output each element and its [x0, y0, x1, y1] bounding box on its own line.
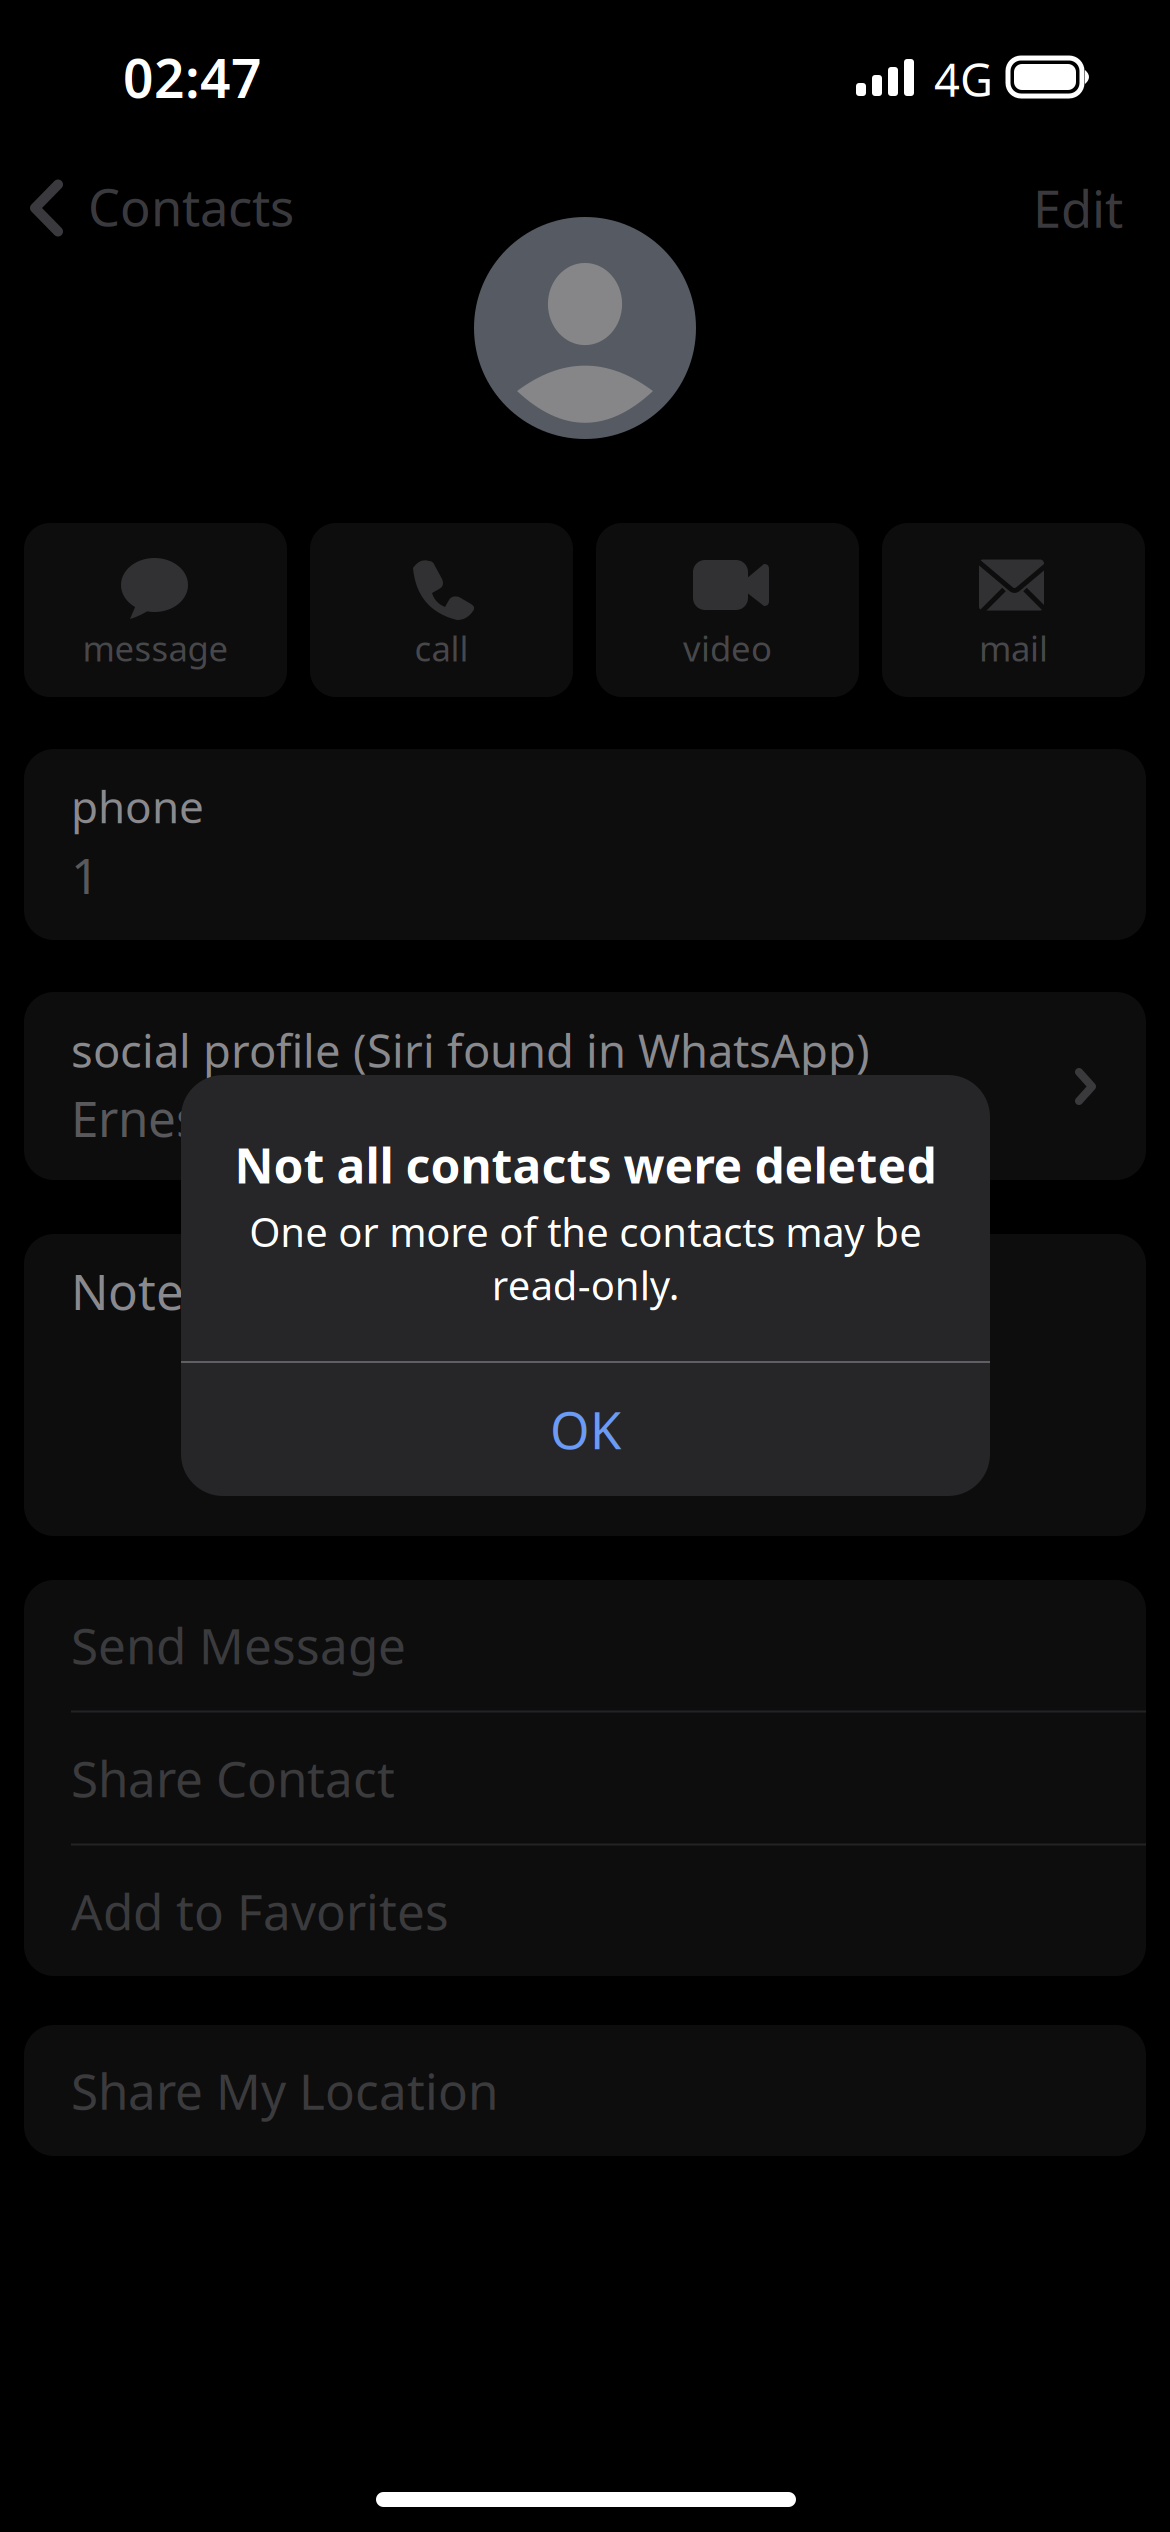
button[interactable]: message	[24, 523, 287, 697]
staticText: call	[414, 625, 468, 671]
button[interactable]: video	[596, 523, 859, 697]
button[interactable]: Edit	[1013, 168, 1143, 248]
staticText: Add to Favorites	[71, 1878, 449, 1944]
staticText: Not all contacts were deleted	[234, 1133, 936, 1197]
button[interactable]: Add to Favorites	[24, 1845, 1146, 1976]
staticText: social profile (Siri found in WhatsApp)	[71, 1020, 870, 1080]
button[interactable]: OK	[181, 1363, 990, 1496]
staticText: One or more of the contacts may be read-…	[249, 1205, 922, 1311]
button[interactable]: Share Contact	[24, 1712, 1146, 1843]
staticText: Share My Location	[71, 2058, 498, 2123]
staticText: 02:47	[123, 42, 262, 113]
staticText: Send Message	[71, 1612, 406, 1678]
button[interactable]: Contacts	[14, 168, 314, 248]
staticText: video	[683, 625, 772, 671]
staticText: Notes	[71, 1258, 208, 1323]
staticText: OK	[550, 1396, 621, 1463]
staticText: Edit	[1033, 174, 1123, 242]
button[interactable]: Share My Location	[24, 2025, 1146, 2156]
button[interactable]: call	[310, 523, 573, 697]
staticText: Share Contact	[71, 1745, 395, 1811]
staticText: Contacts	[88, 173, 294, 240]
button[interactable]: mail	[882, 523, 1145, 697]
staticText: phone	[71, 777, 204, 835]
staticText: Ernest	[71, 1085, 218, 1150]
staticText: 4G	[934, 49, 993, 109]
staticText: mail	[979, 625, 1048, 671]
staticText: 1	[71, 842, 99, 907]
staticText: message	[82, 625, 228, 671]
button[interactable]: Send Message	[24, 1579, 1146, 1710]
